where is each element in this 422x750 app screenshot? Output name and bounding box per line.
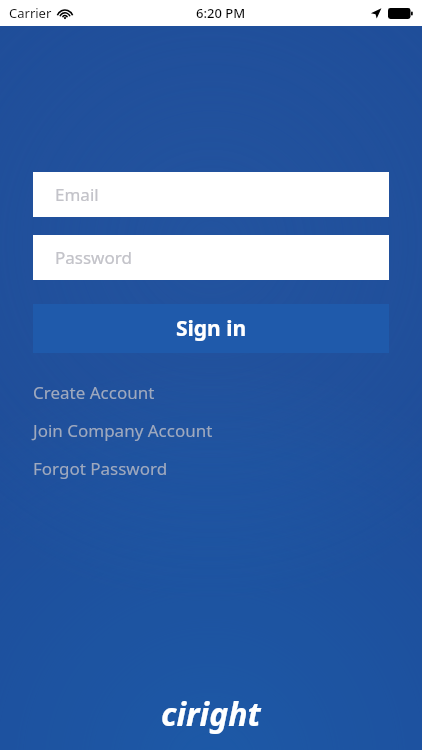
button[interactable]: Password — [33, 235, 389, 280]
staticText: 6:20 PM — [196, 4, 246, 22]
staticText: Sign in — [176, 314, 247, 343]
staticText: ciright — [161, 692, 261, 736]
staticText: Forgot Password — [33, 457, 168, 480]
button[interactable]: Forgot Password — [33, 449, 389, 487]
other: Location — [370, 7, 382, 19]
button[interactable]: Sign in — [33, 304, 389, 353]
button[interactable]: Create Account — [33, 373, 389, 411]
button[interactable]: Join Company Account — [33, 411, 389, 449]
staticText: Carrier — [9, 4, 52, 22]
staticText: Create Account — [33, 381, 155, 404]
staticText: Email — [55, 183, 99, 206]
button[interactable]: Email — [33, 172, 389, 217]
staticText: Join Company Account — [33, 419, 213, 442]
staticText: Password — [55, 246, 132, 269]
